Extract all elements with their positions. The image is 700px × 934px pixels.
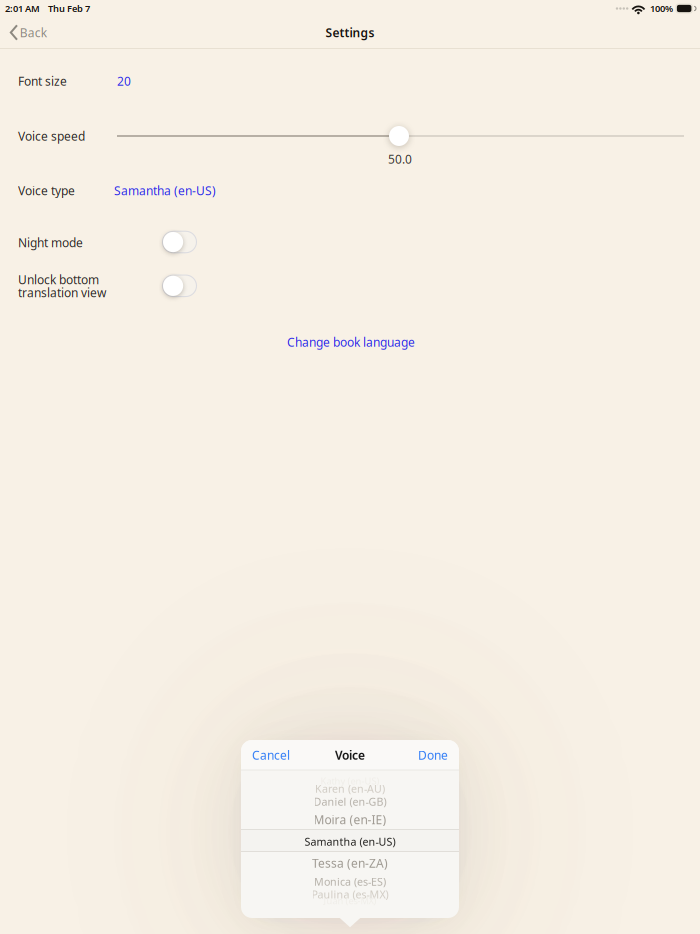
button[interactable]: Samantha (en-US) — [111, 177, 219, 203]
staticText: Juan (es-MX) — [323, 894, 376, 907]
staticText: Moira (en-IE) — [313, 812, 386, 827]
staticText: Thu Feb 7 — [48, 2, 90, 15]
staticText: Settings — [325, 24, 374, 40]
staticText: Font size — [18, 73, 67, 89]
staticText: Cancel — [252, 747, 290, 763]
staticText: Samantha (en-US) — [114, 182, 216, 198]
staticText: Unlock bottom — [18, 271, 99, 287]
staticText: Done — [418, 747, 448, 763]
staticText: Change book language — [287, 334, 415, 350]
button[interactable]: Cancel — [241, 740, 301, 770]
staticText: 100% — [650, 2, 673, 15]
staticText: Voice — [335, 747, 365, 763]
staticText: Samantha (en-US) — [304, 834, 395, 849]
staticText: Daniel (en-GB) — [313, 794, 386, 809]
staticText: 50.0 — [388, 151, 412, 167]
button[interactable]: Night mode — [162, 231, 196, 253]
staticText: Voice speed — [18, 128, 85, 144]
staticText: Kathy (en-US) — [320, 775, 379, 787]
staticText: Karen (en-AU) — [315, 781, 385, 796]
staticText: Tessa (en-ZA) — [312, 855, 388, 871]
staticText: 2:01 AM — [5, 2, 40, 15]
staticText: Back — [20, 24, 47, 40]
button[interactable]: Change book language — [279, 328, 423, 356]
staticText: 20 — [117, 73, 131, 89]
staticText: translation view — [18, 284, 106, 300]
button[interactable]: Back — [0, 17, 59, 48]
staticText: Voice type — [18, 182, 75, 198]
button[interactable]: Unlock bottom translation view — [162, 275, 196, 297]
staticText: Monica (es-ES) — [314, 874, 386, 889]
button[interactable]: 20 — [114, 68, 134, 94]
staticText: Night mode — [18, 234, 83, 250]
staticText: Paulina (es-MX) — [311, 887, 388, 901]
button[interactable]: Done — [407, 740, 459, 770]
